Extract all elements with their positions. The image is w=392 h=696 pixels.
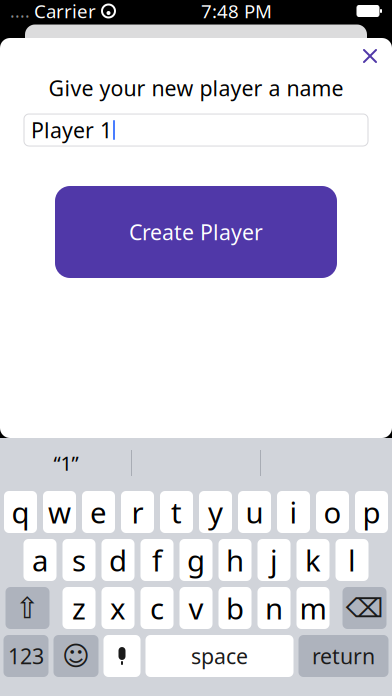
staticText: ⇧ [15, 591, 40, 625]
staticText: return [312, 642, 375, 670]
staticText: l [348, 540, 356, 579]
button[interactable]: l [335, 539, 368, 581]
staticText: j [270, 540, 278, 579]
staticText: 123 [8, 642, 44, 670]
button[interactable]: f [140, 539, 173, 581]
staticText: f [152, 540, 162, 579]
button[interactable]: g [179, 539, 212, 581]
staticText: w [48, 492, 71, 531]
button[interactable]: t [160, 491, 193, 533]
staticText: g [187, 540, 205, 579]
button[interactable]: v [179, 587, 212, 629]
staticText: n [265, 588, 283, 627]
button[interactable]: q [4, 491, 37, 533]
button[interactable]: Close [348, 39, 392, 73]
button[interactable]: Create Player [55, 186, 337, 278]
staticText: .... [10, 0, 30, 22]
button[interactable]: c [140, 587, 173, 629]
button[interactable]: k [296, 539, 329, 581]
button[interactable]: u [238, 491, 271, 533]
staticText: “1” [53, 450, 78, 476]
staticText: u [245, 492, 263, 531]
button[interactable]: j [257, 539, 290, 581]
staticText: h [226, 540, 244, 579]
button[interactable]: b [218, 587, 251, 629]
button[interactable]: Dictate [103, 635, 140, 677]
staticText: c [150, 588, 164, 627]
staticText: ⌫ [345, 593, 383, 623]
button[interactable]: y [199, 491, 232, 533]
button[interactable]: Delete [342, 587, 386, 629]
staticText: s [72, 540, 86, 579]
button[interactable]: “1” [1, 441, 131, 485]
button[interactable]: n [257, 587, 290, 629]
staticText: b [226, 588, 244, 627]
staticText: q [11, 492, 29, 531]
staticText: 7:48 PM [201, 0, 272, 23]
button[interactable]: space [145, 635, 293, 677]
staticText: e [90, 492, 107, 531]
button[interactable]: p [355, 491, 388, 533]
staticText: o [323, 492, 341, 531]
button[interactable]: z [62, 587, 95, 629]
button[interactable]: o [316, 491, 349, 533]
staticText: t [171, 492, 182, 531]
button[interactable]: x [101, 587, 134, 629]
staticText: x [110, 588, 126, 627]
staticText: y [208, 492, 223, 531]
button[interactable]: w [43, 491, 76, 533]
staticText: Give your new player a name [48, 74, 343, 102]
button[interactable]: r [121, 491, 154, 533]
button[interactable]: Emoji [53, 635, 98, 677]
staticText: a [32, 540, 48, 579]
staticText: p [362, 492, 380, 531]
button[interactable]: 123 [3, 635, 48, 677]
button[interactable]: i [277, 491, 310, 533]
button[interactable]: m [296, 587, 329, 629]
button[interactable]: s [62, 539, 95, 581]
button[interactable]: e [82, 491, 115, 533]
staticText: m [299, 588, 326, 627]
button[interactable]: d [101, 539, 134, 581]
staticText: v [188, 588, 203, 627]
staticText: space [191, 642, 248, 670]
staticText: d [109, 540, 127, 579]
staticText: Carrier [34, 0, 96, 23]
button[interactable]: a [23, 539, 56, 581]
staticText: r [131, 492, 143, 531]
staticText: i [289, 492, 297, 531]
button[interactable]: h [218, 539, 251, 581]
button[interactable]: Shift [5, 587, 49, 629]
staticText: z [72, 588, 86, 627]
staticText: Create Player [129, 218, 263, 246]
button[interactable]: return [298, 635, 388, 677]
staticText: ☺ [62, 641, 90, 671]
staticText: Player 1 [31, 116, 112, 144]
staticText: k [305, 540, 321, 579]
